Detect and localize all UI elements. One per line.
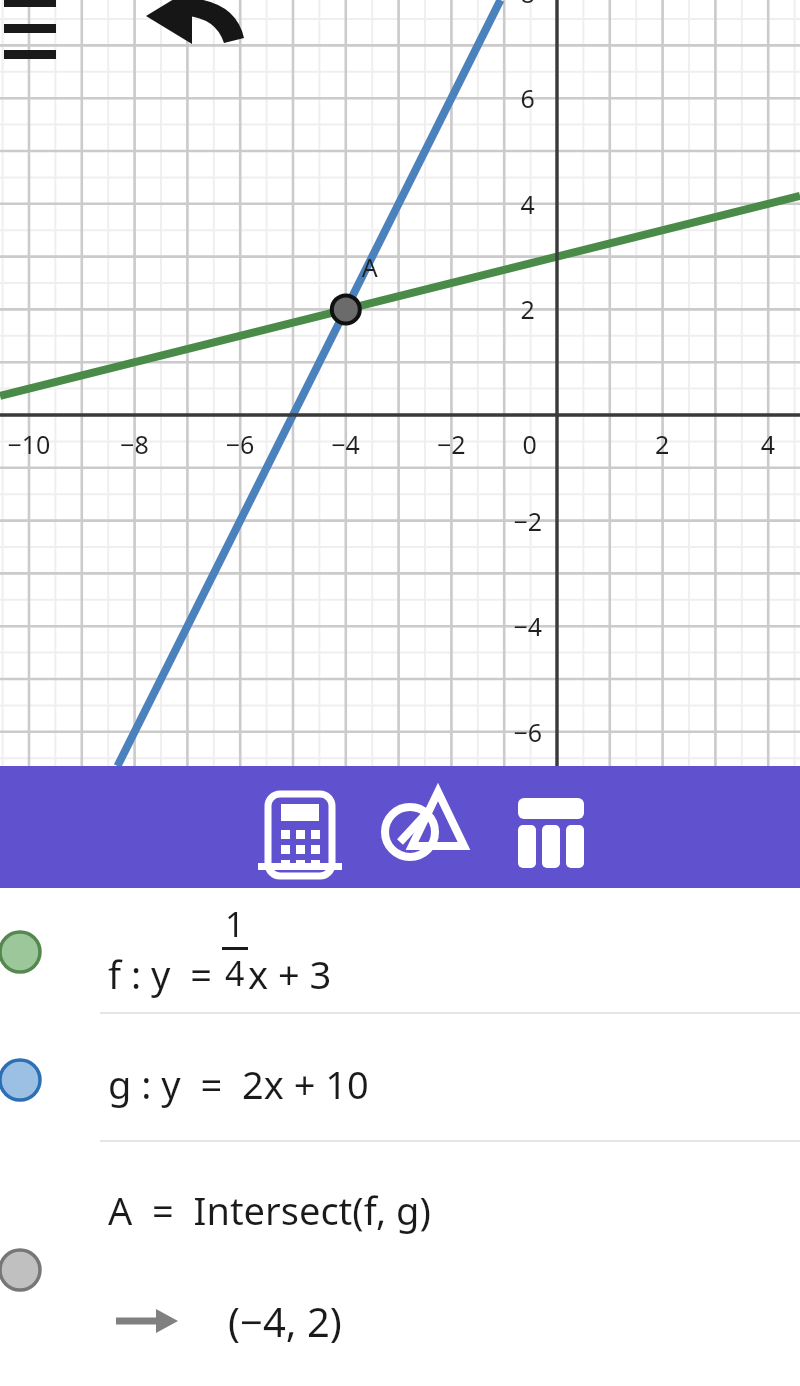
staticText: g : y = 2x + 10	[108, 1058, 369, 1110]
staticText: A = Intersect(f, g)	[108, 1184, 431, 1236]
button[interactable]: Calculator	[240, 766, 360, 888]
button[interactable]: Toggle visibility	[0, 1058, 42, 1102]
button[interactable]: Toggle visibility	[0, 1142, 800, 1386]
button[interactable]: Toggle visibility	[0, 1014, 800, 1142]
staticText: f : y =	[108, 948, 222, 1000]
button[interactable]: Toggle visibility	[0, 888, 800, 1014]
button[interactable]: Table	[490, 766, 610, 888]
staticText: (−4, 2)	[228, 1294, 342, 1348]
button[interactable]: Menu	[0, 0, 58, 36]
staticText: x + 3	[248, 948, 332, 1000]
button[interactable]: Geometry	[362, 766, 482, 888]
staticText: 1	[225, 901, 245, 947]
staticText: 4	[225, 950, 245, 996]
button[interactable]: Undo	[142, 0, 214, 24]
button[interactable]: Toggle visibility	[0, 1248, 42, 1292]
button[interactable]: Toggle visibility	[0, 930, 42, 974]
